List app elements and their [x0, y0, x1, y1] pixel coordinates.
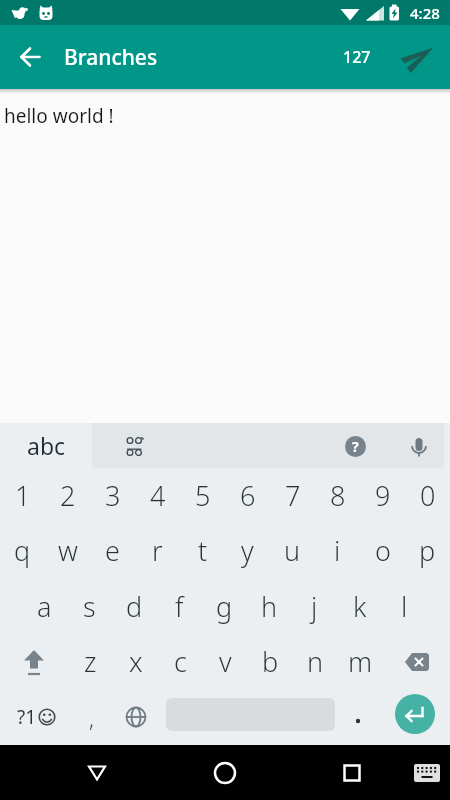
button[interactable]: 0 [405, 468, 450, 523]
staticText: l [401, 588, 408, 625]
staticText: 7 [285, 477, 301, 514]
staticText: e [105, 532, 120, 569]
button[interactable] [0, 634, 68, 689]
staticText: c [174, 643, 187, 680]
staticText: b [262, 643, 279, 680]
button[interactable]: k [337, 578, 382, 634]
button[interactable]: p [405, 523, 450, 578]
button[interactable]: i [315, 523, 360, 578]
staticText: s [83, 588, 96, 625]
button[interactable]: 4 [135, 468, 180, 523]
button[interactable]: , [69, 693, 113, 741]
button[interactable]: w [45, 523, 90, 578]
button[interactable]: 8 [315, 468, 360, 523]
staticText: ?1 [17, 704, 37, 730]
button[interactable] [201, 749, 249, 797]
button[interactable]: 6 [225, 468, 270, 523]
staticText: 3 [105, 477, 121, 514]
staticText: 4 [150, 477, 166, 514]
staticText: 1 [15, 477, 31, 514]
button[interactable]: abc [0, 423, 92, 468]
staticText: 5 [195, 477, 211, 514]
button[interactable]: d [112, 578, 157, 634]
staticText: 0 [420, 477, 436, 514]
staticText: u [284, 532, 301, 569]
staticText: t [198, 532, 208, 569]
button[interactable]: a [22, 578, 67, 634]
button[interactable] [404, 431, 434, 461]
button[interactable]: n [293, 634, 338, 689]
staticText: m [348, 643, 373, 680]
button[interactable]: j [292, 578, 337, 634]
button[interactable]: x [113, 634, 158, 689]
staticText: 9 [375, 477, 391, 514]
staticText: i [334, 532, 341, 569]
button[interactable]: c [158, 634, 203, 689]
button[interactable] [395, 694, 435, 734]
button[interactable]: 3 [90, 468, 135, 523]
staticText: r [152, 532, 163, 569]
staticText: q [14, 532, 31, 569]
button[interactable] [328, 749, 376, 797]
button[interactable] [395, 33, 443, 81]
staticText: 2 [60, 477, 76, 514]
staticText: k [353, 588, 367, 625]
staticText: y [241, 532, 254, 569]
button[interactable]: 5 [180, 468, 225, 523]
staticText: 127 [343, 46, 371, 68]
staticText: d [126, 588, 143, 625]
staticText: , [89, 703, 94, 733]
button[interactable]: h [247, 578, 292, 634]
staticText: g [216, 588, 233, 625]
button[interactable]: f [157, 578, 202, 634]
button[interactable]: y [225, 523, 270, 578]
staticText: o [375, 532, 391, 569]
staticText: ? [352, 437, 359, 456]
button[interactable]: ? [340, 431, 370, 461]
button[interactable] [73, 749, 121, 797]
button[interactable]: ?1 [8, 693, 64, 741]
staticText: Branches [64, 43, 158, 72]
button[interactable]: v [203, 634, 248, 689]
staticText: 4:28 [410, 3, 440, 23]
staticText: w [58, 532, 78, 569]
button[interactable]: q [0, 523, 45, 578]
staticText: x [129, 643, 143, 680]
staticText: p [419, 532, 436, 569]
button[interactable] [92, 423, 444, 468]
staticText: abc [27, 430, 66, 461]
staticText: f [175, 588, 184, 625]
button[interactable]: t [180, 523, 225, 578]
staticText: z [84, 643, 97, 680]
button[interactable]: 9 [360, 468, 405, 523]
staticText: 6 [240, 477, 256, 514]
button[interactable] [383, 634, 450, 689]
button[interactable]: m [338, 634, 383, 689]
staticText: a [37, 588, 52, 625]
button[interactable]: 2 [45, 468, 90, 523]
button[interactable]: 1 [0, 468, 45, 523]
staticText: hello world ! [4, 103, 114, 129]
staticText: h [261, 588, 278, 625]
staticText: v [219, 643, 232, 680]
button[interactable]: u [270, 523, 315, 578]
button[interactable]: l [382, 578, 427, 634]
button[interactable] [336, 693, 380, 741]
staticText: n [307, 643, 324, 680]
staticText: j [311, 588, 318, 625]
button[interactable]: g [202, 578, 247, 634]
button[interactable]: s [67, 578, 112, 634]
button[interactable]: e [90, 523, 135, 578]
button[interactable]: b [248, 634, 293, 689]
button[interactable] [406, 752, 448, 794]
staticText: 8 [330, 477, 346, 514]
button[interactable]: 7 [270, 468, 315, 523]
button[interactable]: r [135, 523, 180, 578]
button[interactable] [7, 33, 55, 81]
button[interactable]: o [360, 523, 405, 578]
button[interactable]: z [68, 634, 113, 689]
button[interactable] [113, 693, 158, 741]
